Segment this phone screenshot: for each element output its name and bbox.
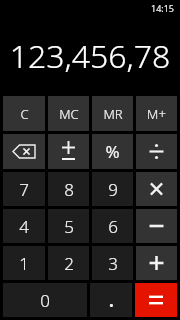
button[interactable]: 9 <box>92 172 133 206</box>
button[interactable]: 2 <box>48 246 89 280</box>
button[interactable]: 4 <box>3 209 45 243</box>
button[interactable]: C <box>3 96 45 131</box>
button[interactable]: 7 <box>3 172 45 206</box>
button[interactable]: . <box>90 283 132 317</box>
staticText: MC <box>59 105 79 123</box>
staticText: % <box>105 140 120 163</box>
staticText: 9 <box>108 178 118 201</box>
staticText: 3 <box>108 252 118 275</box>
button[interactable]: MR <box>92 96 133 131</box>
staticText: 5 <box>64 215 74 238</box>
button[interactable]: 8 <box>48 172 89 206</box>
button[interactable]: 3 <box>92 246 133 280</box>
button[interactable]: 6 <box>92 209 133 243</box>
button[interactable]: Multiply <box>136 172 177 206</box>
staticText: 8 <box>64 178 74 201</box>
button[interactable]: Plus <box>136 246 177 280</box>
button[interactable]: M+ <box>136 96 177 131</box>
staticText: C <box>20 105 29 123</box>
button[interactable]: 5 <box>48 209 89 243</box>
staticText: 14:15 <box>151 2 175 14</box>
staticText: 123,456,789 <box>6 34 174 78</box>
button[interactable]: Minus <box>136 209 177 243</box>
button[interactable]: Backspace <box>3 134 45 169</box>
staticText: . <box>109 289 114 312</box>
button[interactable]: Divide <box>136 134 177 169</box>
staticText: 6 <box>108 215 118 238</box>
staticText: 0 <box>40 289 50 312</box>
staticText: MR <box>103 105 123 123</box>
staticText: 4 <box>19 215 29 238</box>
staticText: 2 <box>64 252 74 275</box>
button[interactable]: Plus minus sign <box>48 134 89 169</box>
button[interactable]: Equals <box>135 283 177 317</box>
button[interactable]: % <box>92 134 133 169</box>
staticText: M+ <box>147 105 166 123</box>
button[interactable]: 1 <box>3 246 45 280</box>
button[interactable]: 0 <box>3 283 87 317</box>
staticText: 1 <box>19 252 29 275</box>
button[interactable]: MC <box>48 96 89 131</box>
staticText: 7 <box>19 178 29 201</box>
